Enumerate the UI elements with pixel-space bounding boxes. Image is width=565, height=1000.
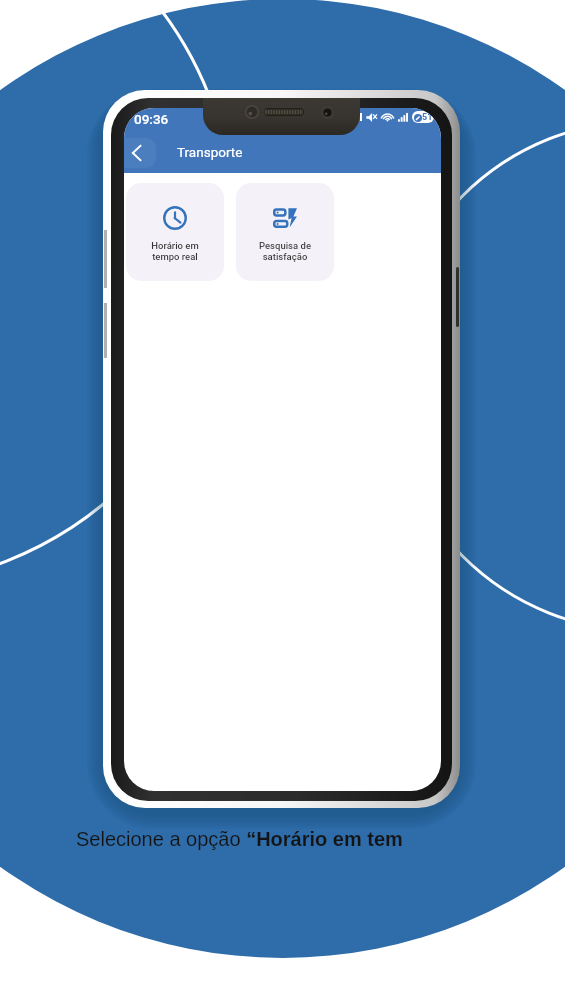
staticText: 51 bbox=[422, 112, 433, 123]
button[interactable]: Horário em tempo real bbox=[126, 183, 224, 281]
staticText: Pesquisa de satisfação bbox=[236, 240, 334, 262]
staticText: Transporte bbox=[177, 144, 243, 160]
staticText: 09:36 bbox=[134, 111, 169, 127]
staticText: Selecione a opção “Horário em tem bbox=[76, 828, 403, 850]
button[interactable]: Back bbox=[124, 138, 156, 168]
button[interactable]: Pesquisa de satisfação bbox=[236, 183, 334, 281]
staticText: Horário em tempo real bbox=[126, 240, 224, 262]
